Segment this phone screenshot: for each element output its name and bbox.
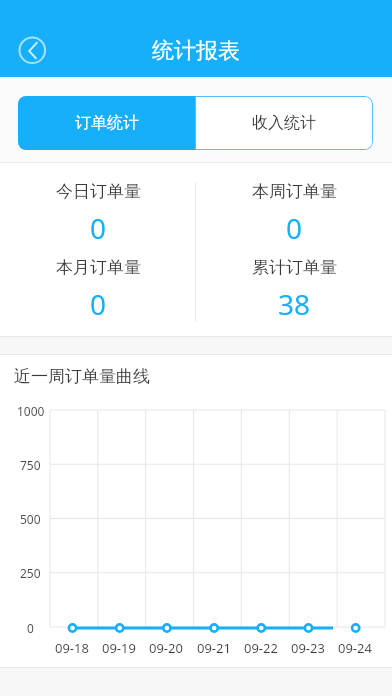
staticText: 09-21: [197, 639, 231, 653]
staticText: 累计订单量: [252, 257, 337, 276]
staticText: 750: [20, 457, 41, 473]
staticText: 本周订单量: [252, 181, 337, 200]
staticText: 本月订单量: [56, 257, 141, 276]
staticText: 09-24: [338, 639, 372, 653]
staticText: 统计报表: [152, 37, 240, 65]
staticText: 近一周订单量曲线: [14, 366, 150, 386]
staticText: 订单统计: [75, 113, 139, 133]
staticText: 250: [20, 565, 41, 581]
button[interactable]: 订单统计: [18, 96, 195, 150]
button[interactable]: [10, 28, 55, 73]
staticText: 0: [27, 620, 34, 636]
staticText: 今日订单量: [56, 181, 141, 200]
staticText: 0: [90, 285, 107, 319]
staticText: 09-22: [244, 639, 278, 653]
staticText: 收入统计: [252, 113, 316, 133]
staticText: 0: [286, 209, 303, 243]
staticText: 500: [20, 511, 41, 527]
staticText: 38: [278, 285, 311, 319]
staticText: 0: [90, 209, 107, 243]
button[interactable]: 收入统计: [195, 96, 373, 150]
staticText: 09-19: [102, 639, 136, 653]
staticText: 1000: [17, 403, 45, 419]
staticText: 09-20: [149, 639, 183, 653]
staticText: 09-23: [291, 639, 325, 653]
staticText: 09-18: [55, 639, 89, 653]
